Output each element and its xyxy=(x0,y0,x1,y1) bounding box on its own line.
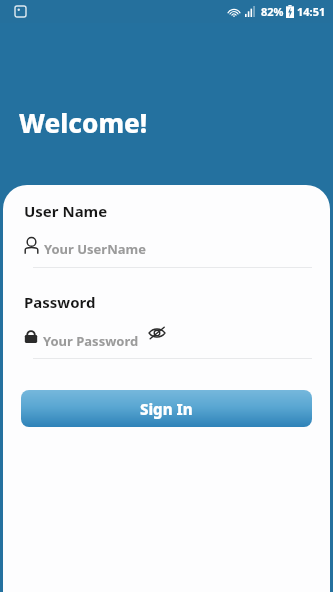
staticText: 14:51 xyxy=(297,4,326,19)
staticText: 82% xyxy=(261,4,284,19)
button[interactable]: Show password xyxy=(145,321,169,345)
staticText: Password xyxy=(24,292,96,312)
button[interactable]: Your UserName xyxy=(3,229,330,261)
staticText: Your UserName xyxy=(44,240,146,258)
button[interactable]: Sign In xyxy=(21,390,312,427)
staticText: Sign In xyxy=(140,399,193,419)
staticText: Welcome! xyxy=(19,105,148,140)
button[interactable]: Your Password xyxy=(3,320,330,352)
staticText: Your Password xyxy=(43,332,139,350)
staticText: User Name xyxy=(24,201,108,221)
